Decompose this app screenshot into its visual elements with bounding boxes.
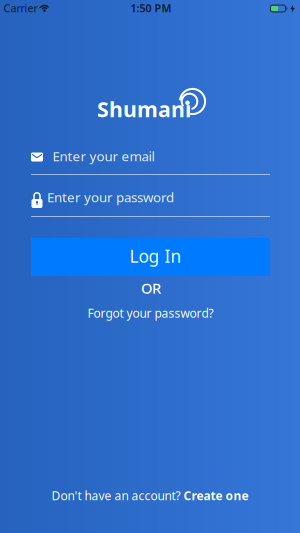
button[interactable]: Don't have an account? Create one bbox=[47, 483, 252, 507]
staticText: Shumanı bbox=[97, 95, 191, 123]
button[interactable]: Forgot your password? bbox=[83, 301, 217, 325]
staticText: Enter your email bbox=[52, 147, 154, 165]
staticText: 1:50 PM bbox=[130, 1, 171, 15]
staticText: Log In bbox=[129, 244, 181, 267]
button[interactable]: Log In bbox=[31, 238, 270, 276]
staticText: Carrier bbox=[3, 1, 37, 15]
button[interactable]: Enter your password bbox=[31, 186, 270, 224]
staticText: Forgot your password? bbox=[87, 305, 213, 321]
staticText: Don't have an account? Create one bbox=[51, 487, 248, 503]
staticText: Enter your password bbox=[47, 188, 174, 206]
staticText: OR bbox=[141, 278, 161, 298]
button[interactable]: Enter your email bbox=[31, 144, 270, 182]
